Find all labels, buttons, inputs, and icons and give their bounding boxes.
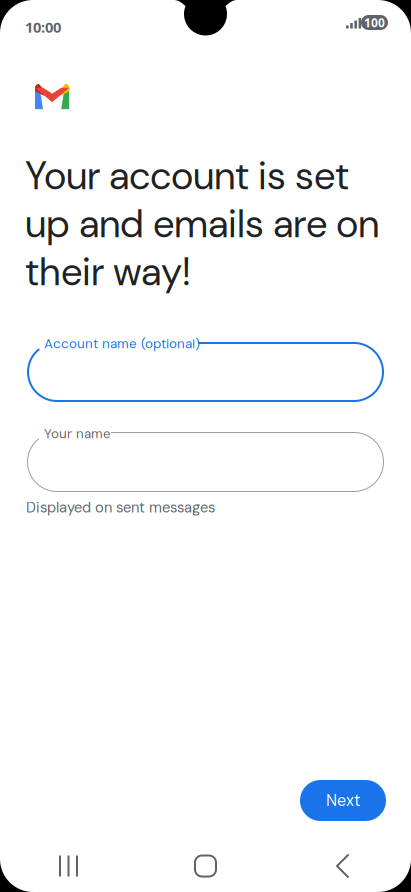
staticText: their way! bbox=[25, 247, 191, 297]
staticText: Next bbox=[326, 790, 360, 811]
staticText: 10:00 bbox=[25, 17, 61, 37]
staticText: Your account is set bbox=[25, 151, 349, 201]
staticText: Your name bbox=[44, 425, 111, 442]
staticText: Account name (optional) bbox=[44, 335, 200, 352]
staticText: up and emails are on bbox=[25, 199, 379, 249]
button[interactable]: Next bbox=[300, 780, 386, 821]
button[interactable]: Back bbox=[274, 840, 411, 892]
staticText: Displayed on sent messages bbox=[26, 498, 215, 517]
staticText: 100 bbox=[364, 14, 385, 31]
button[interactable]: Recent apps bbox=[0, 840, 137, 892]
button[interactable]: Home bbox=[137, 840, 274, 892]
